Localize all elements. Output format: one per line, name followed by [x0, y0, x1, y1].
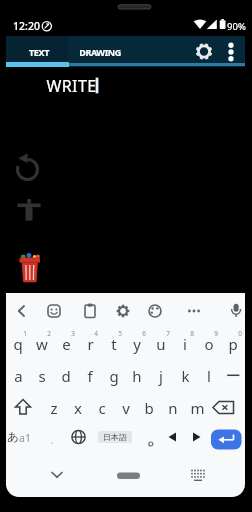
staticText: a	[14, 366, 23, 386]
button[interactable]: z	[42, 397, 66, 419]
staticText: 90%	[227, 20, 246, 33]
staticText: 6	[142, 329, 146, 338]
button[interactable]: l	[197, 365, 221, 387]
button[interactable]: i	[173, 333, 197, 355]
button[interactable]	[42, 298, 68, 324]
button[interactable]	[190, 38, 218, 66]
staticText: q	[13, 334, 23, 354]
staticText: 1	[23, 329, 27, 338]
staticText: t	[111, 334, 117, 354]
button[interactable]	[186, 424, 209, 453]
button[interactable]: TEXT	[14, 41, 64, 63]
staticText: l	[207, 366, 211, 386]
button[interactable]: d	[54, 365, 78, 387]
staticText: o	[204, 334, 214, 354]
button[interactable]	[162, 424, 186, 453]
button[interactable]: e	[54, 333, 78, 355]
button[interactable]	[143, 298, 169, 324]
staticText: f	[87, 366, 93, 386]
staticText: v	[122, 398, 130, 418]
staticText: w	[36, 334, 48, 354]
button[interactable]	[111, 298, 137, 324]
staticText: g	[109, 366, 119, 386]
button[interactable]: w	[30, 333, 54, 355]
button[interactable]	[182, 298, 208, 324]
button[interactable]	[209, 392, 245, 423]
staticText: 2	[47, 329, 51, 338]
button[interactable]: p	[221, 333, 245, 355]
button[interactable]	[10, 298, 36, 324]
button[interactable]: ー	[221, 365, 245, 387]
staticText: m	[190, 398, 205, 418]
button[interactable]	[224, 298, 250, 324]
button[interactable]	[14, 156, 42, 184]
staticText: k	[181, 366, 190, 386]
staticText: p	[228, 334, 238, 354]
button[interactable]	[209, 424, 245, 453]
button[interactable]: DRAWING	[70, 41, 130, 63]
staticText: 7	[166, 329, 170, 338]
button[interactable]	[42, 460, 72, 490]
button[interactable]: v	[114, 397, 138, 419]
button[interactable]	[182, 460, 212, 490]
staticText: h	[132, 366, 142, 386]
button[interactable]: a	[6, 365, 30, 387]
staticText: i	[183, 334, 187, 354]
staticText: ー	[226, 367, 241, 386]
staticText: e	[62, 334, 71, 354]
button[interactable]: x	[66, 397, 90, 419]
button[interactable]: h	[125, 365, 149, 387]
staticText: b	[144, 398, 154, 418]
staticText: z	[50, 398, 58, 418]
staticText: 5	[118, 329, 122, 338]
button[interactable]	[66, 424, 90, 453]
button[interactable]: 日本語	[98, 431, 132, 443]
staticText: r	[87, 334, 94, 354]
button[interactable]: b	[137, 397, 161, 419]
staticText: n	[168, 398, 178, 418]
button[interactable]: a1	[16, 427, 34, 449]
button[interactable]: m	[185, 397, 209, 419]
staticText: 0	[238, 329, 242, 338]
button[interactable]: u	[149, 333, 173, 355]
button[interactable]: t	[102, 333, 126, 355]
staticText: c	[98, 398, 106, 418]
button[interactable]: n	[161, 397, 185, 419]
button[interactable]	[68, 36, 131, 67]
staticText: 9	[214, 329, 218, 338]
staticText: 4	[94, 329, 98, 338]
staticText: 日本語	[103, 432, 127, 442]
staticText: d	[61, 366, 71, 386]
button[interactable]: f	[78, 365, 102, 387]
staticText: あ	[7, 430, 19, 444]
staticText: s	[38, 366, 46, 386]
button[interactable]: y	[125, 333, 149, 355]
button[interactable]	[6, 36, 68, 67]
staticText: y	[133, 334, 141, 354]
staticText: j	[159, 366, 163, 386]
button[interactable]	[220, 38, 242, 66]
button[interactable]	[14, 198, 42, 226]
staticText: u	[156, 334, 166, 354]
button[interactable]	[110, 460, 146, 486]
staticText: 3	[71, 329, 75, 338]
button[interactable]	[6, 392, 42, 423]
button[interactable]: o	[197, 333, 221, 355]
button[interactable]: s	[30, 365, 54, 387]
button[interactable]	[138, 424, 162, 453]
staticText: 8	[190, 329, 194, 338]
button[interactable]: 、	[46, 429, 62, 451]
staticText: x	[74, 398, 82, 418]
button[interactable]: g	[102, 365, 126, 387]
button[interactable]	[14, 252, 42, 284]
button[interactable]: あ	[4, 426, 22, 448]
button[interactable]: c	[90, 397, 114, 419]
button[interactable]	[78, 298, 104, 324]
button[interactable]: j	[149, 365, 173, 387]
button[interactable]: k	[173, 365, 197, 387]
staticText: DRAWING	[79, 46, 121, 58]
button[interactable]: q	[6, 333, 30, 355]
button[interactable]: r	[78, 333, 102, 355]
staticText: TEXT	[29, 46, 49, 58]
staticText: WRITE	[46, 75, 97, 97]
